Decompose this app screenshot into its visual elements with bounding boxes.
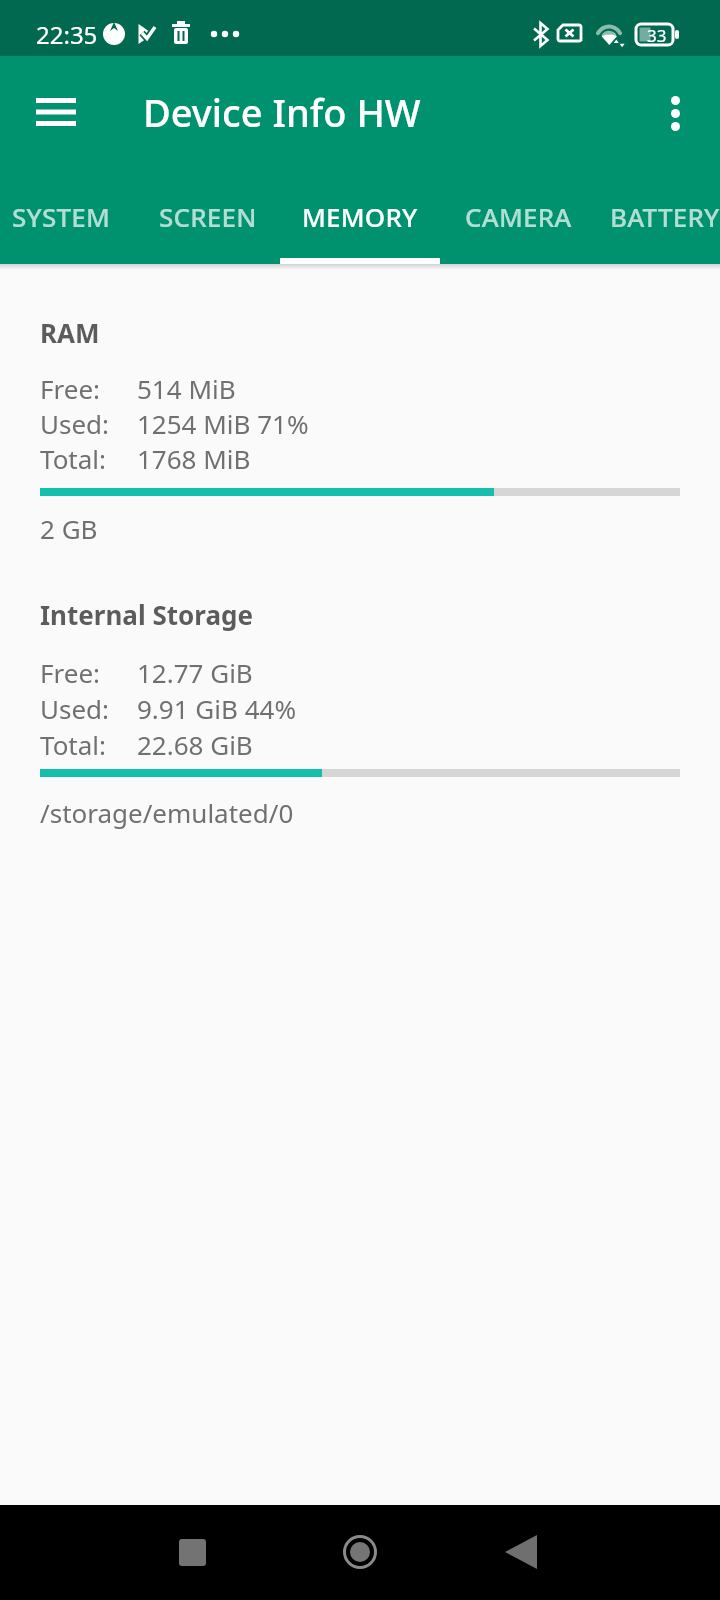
- staticText: 12.77 GiB: [137, 655, 253, 690]
- staticText: Total:: [40, 441, 107, 476]
- staticText: Free:: [40, 371, 101, 406]
- button[interactable]: SYSTEM: [0, 168, 136, 264]
- staticText: 514 MiB: [137, 371, 236, 406]
- staticText: Used:: [40, 691, 110, 726]
- staticText: Free:: [40, 655, 101, 690]
- staticText: SCREEN: [159, 199, 257, 234]
- staticText: 1768 MiB: [137, 441, 251, 476]
- button[interactable]: CAMERA: [440, 168, 596, 264]
- staticText: /storage/emulated/0: [40, 795, 294, 830]
- staticText: CAMERA: [465, 199, 572, 234]
- staticText: 22:35: [36, 18, 98, 51]
- button[interactable]: [486, 1517, 556, 1587]
- staticText: RAM: [40, 315, 100, 350]
- button[interactable]: [20, 76, 92, 148]
- button[interactable]: BATTERY: [582, 168, 720, 264]
- staticText: 1254 MiB 71%: [137, 406, 309, 441]
- staticText: 2 GB: [40, 511, 98, 546]
- staticText: 9.91 GiB 44%: [137, 691, 296, 726]
- staticText: Internal Storage: [40, 597, 253, 632]
- staticText: Device Info HW: [143, 86, 421, 138]
- button[interactable]: [325, 1517, 395, 1587]
- staticText: BATTERY: [610, 199, 720, 234]
- button[interactable]: SCREEN: [136, 168, 280, 264]
- staticText: 33: [647, 24, 667, 47]
- staticText: 22.68 GiB: [137, 727, 253, 762]
- button[interactable]: [157, 1517, 227, 1587]
- staticText: Used:: [40, 406, 110, 441]
- button[interactable]: [639, 77, 711, 149]
- button[interactable]: MEMORY: [280, 168, 440, 264]
- staticText: SYSTEM: [12, 199, 110, 234]
- staticText: Total:: [40, 727, 107, 762]
- staticText: MEMORY: [302, 199, 418, 234]
